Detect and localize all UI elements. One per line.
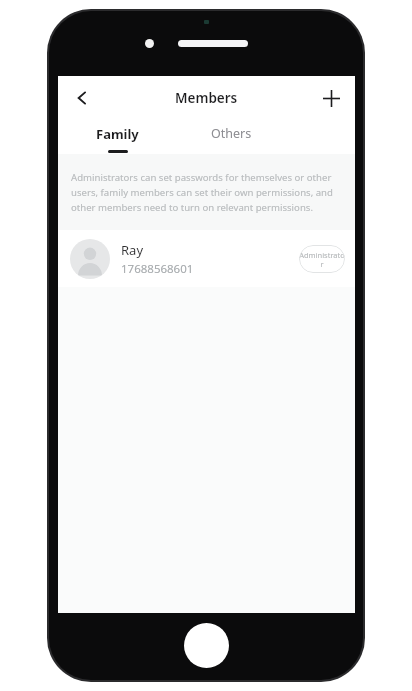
- staticText: Administrators can set passwords for the…: [71, 171, 342, 214]
- button[interactable]: Ray: [58, 230, 355, 287]
- button[interactable]: Administrator: [299, 245, 345, 273]
- button[interactable]: Back: [66, 82, 98, 114]
- staticText: Ray: [121, 241, 144, 259]
- button[interactable]: Add member: [315, 82, 347, 114]
- staticText: 17688568601: [121, 261, 194, 277]
- staticText: Members: [175, 89, 238, 107]
- button[interactable]: Family: [58, 119, 176, 154]
- staticText: Administrator: [299, 250, 345, 269]
- staticText: Others: [211, 125, 252, 142]
- button[interactable]: Others: [176, 119, 286, 154]
- staticText: Family: [96, 125, 139, 143]
